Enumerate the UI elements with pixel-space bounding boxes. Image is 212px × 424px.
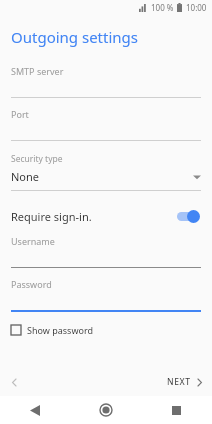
button[interactable]: Back [0, 396, 70, 424]
button[interactable]: Security type [0, 153, 212, 191]
button[interactable]: Port [0, 98, 212, 141]
button[interactable]: NEXT [157, 372, 212, 392]
button[interactable]: Require sign-in toggle [175, 208, 201, 224]
button[interactable]: Password [0, 268, 212, 312]
button[interactable]: Home [70, 396, 141, 424]
staticText: Port [11, 108, 29, 120]
staticText: 100 % [151, 2, 174, 13]
staticText: None [11, 169, 193, 184]
staticText: SMTP server [11, 65, 64, 77]
staticText: Username [11, 235, 55, 247]
button[interactable]: Show password [0, 322, 101, 338]
button[interactable]: Previous [0, 368, 28, 396]
staticText: Security type [11, 153, 63, 165]
button[interactable]: Username [0, 235, 212, 268]
other: Open security type dropdown [193, 173, 201, 181]
staticText: 10:00 [186, 2, 207, 13]
button[interactable]: Require sign-in. [0, 203, 212, 229]
staticText: Password [11, 278, 52, 290]
staticText: Require sign-in. [11, 209, 175, 224]
button[interactable]: Recent apps [141, 396, 212, 424]
staticText: Show password [27, 324, 93, 336]
staticText: NEXT [167, 376, 191, 388]
button[interactable]: SMTP server [0, 65, 212, 98]
staticText: Outgoing settings [11, 27, 138, 47]
